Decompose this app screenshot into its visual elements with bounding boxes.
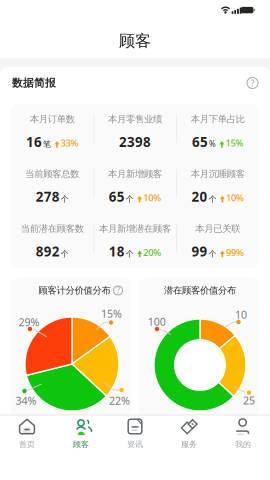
staticText: 本月订单数 [30, 113, 75, 125]
staticText: 笔 [43, 139, 51, 149]
staticText: 个 [208, 249, 216, 259]
staticText: 个 [126, 249, 134, 259]
staticText: 278 [36, 188, 60, 205]
staticText: 本月零售业绩 [108, 113, 162, 125]
staticText: 本月下单占比 [191, 113, 245, 125]
staticText: 20% [143, 246, 161, 259]
staticText: 顾客 [73, 439, 89, 449]
staticText: 个 [61, 249, 69, 259]
staticText: 892 [36, 242, 60, 260]
staticText: % [209, 138, 216, 149]
staticText: 65 [109, 188, 125, 205]
staticText: 10% [226, 191, 244, 204]
staticText: 本月沉睡顾客 [191, 168, 245, 180]
staticText: 99 [191, 242, 207, 260]
staticText: 33% [60, 137, 78, 149]
staticText: ? [116, 285, 119, 296]
staticText: 15% [225, 137, 243, 149]
button[interactable]: 首页 [0, 412, 54, 480]
button[interactable]: 服务 [162, 412, 216, 480]
staticText: 顾客 [119, 31, 151, 51]
button[interactable]: 资讯 [108, 412, 162, 480]
staticText: ? [250, 77, 254, 89]
staticText: 34% [15, 393, 36, 408]
staticText: 65 [192, 133, 208, 151]
staticText: 首页 [19, 439, 35, 449]
staticText: 29% [18, 315, 39, 329]
staticText: 16 [26, 133, 42, 151]
staticText: 25 [243, 393, 255, 407]
staticText: 100 [148, 315, 166, 329]
staticText: 个 [61, 194, 69, 204]
staticText: 99% [226, 246, 244, 259]
staticText: 潜在顾客价值分布 [164, 285, 236, 296]
staticText: 20 [191, 188, 207, 205]
staticText: 本月已关联 [195, 223, 240, 234]
staticText: 服务 [181, 439, 197, 449]
staticText: 我的 [235, 439, 251, 449]
staticText: 18 [109, 242, 125, 260]
staticText: 15% [101, 306, 122, 321]
staticText: 当前潜在顾客数 [21, 223, 84, 234]
staticText: 10% [143, 191, 161, 204]
staticText: 本月新增顾客 [108, 168, 162, 180]
staticText: 10 [235, 307, 247, 322]
staticText: 数据简报 [12, 76, 56, 89]
staticText: 资讯 [127, 439, 143, 449]
staticText: 当前顾客总数 [25, 168, 79, 180]
button[interactable]: 顾客 [54, 412, 108, 480]
staticText: 2398 [119, 133, 151, 151]
staticText: 22% [109, 393, 130, 408]
staticText: 顾客计分价值分布 [38, 285, 110, 296]
button[interactable]: 数据简报说明 [247, 77, 258, 88]
staticText: 个 [208, 194, 216, 204]
staticText: 个 [126, 194, 134, 204]
button[interactable]: 我的 [216, 412, 270, 480]
staticText: 本月新增潜在顾客 [99, 223, 171, 234]
button[interactable]: 顾客计分价值分布说明 [113, 286, 122, 295]
